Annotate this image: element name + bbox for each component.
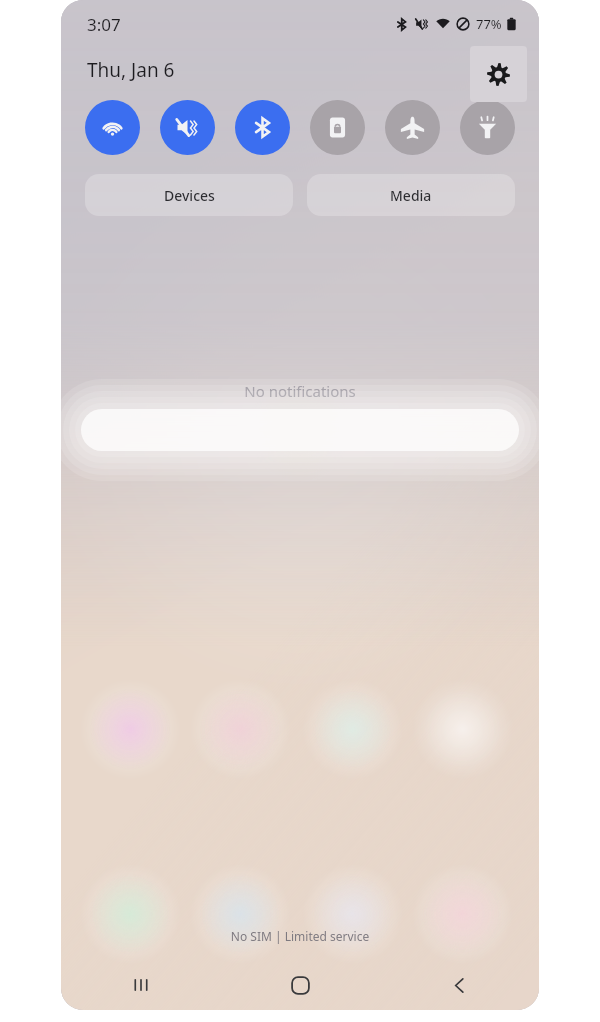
button[interactable]: Home [221, 960, 380, 1010]
button[interactable]: Media [307, 174, 515, 216]
button[interactable]: Mute [160, 100, 215, 155]
staticText: No notifications [61, 381, 539, 401]
button[interactable]: Recents [61, 960, 221, 1010]
button[interactable]: Airplane mode [385, 100, 440, 155]
button[interactable]: Devices [85, 174, 293, 216]
staticText: Media [390, 186, 432, 205]
button[interactable]: Wi-Fi [85, 100, 140, 155]
staticText: 3:07 [87, 13, 121, 36]
button[interactable]: Bluetooth [235, 100, 290, 155]
button[interactable]: Settings [470, 46, 527, 102]
staticText: No SIM | Limited service [61, 928, 539, 944]
staticText: Thu, Jan 6 [87, 57, 175, 83]
staticText: 77% [476, 15, 502, 33]
button[interactable]: SIM lock [310, 100, 365, 155]
button[interactable]: Back [380, 960, 539, 1010]
staticText: Devices [164, 186, 215, 205]
button[interactable]: Flashlight [460, 100, 515, 155]
